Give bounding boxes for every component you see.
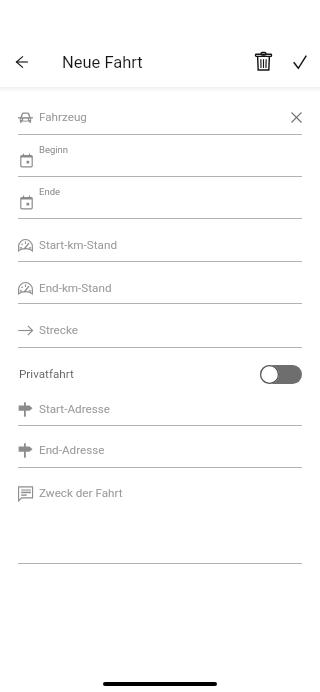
staticText: Zweck der Fahrt: [39, 486, 123, 500]
button[interactable]: Delete: [241, 39, 286, 84]
button[interactable]: Start-km-Stand: [0, 218, 320, 260]
staticText: Start-Adresse: [39, 402, 110, 416]
button[interactable]: End-Adresse: [0, 425, 320, 467]
button[interactable]: End-km-Stand: [0, 261, 320, 304]
staticText: Beginn: [39, 144, 69, 155]
staticText: Neue Fahrt: [62, 53, 143, 72]
button[interactable]: Start-Adresse: [0, 390, 320, 425]
button[interactable]: Fahrzeug: [0, 91, 320, 134]
button[interactable]: Strecke: [0, 303, 320, 347]
staticText: Ende: [39, 186, 61, 197]
button[interactable]: Privatfahrt: [0, 347, 320, 390]
button[interactable]: Beginn: [0, 134, 320, 176]
staticText: Start-km-Stand: [39, 238, 117, 252]
button[interactable]: Zweck der Fahrt: [0, 467, 320, 562]
button[interactable]: Save: [277, 39, 320, 84]
button[interactable]: Back: [0, 39, 44, 84]
button[interactable]: Ende: [0, 176, 320, 219]
staticText: Fahrzeug: [39, 110, 87, 124]
staticText: Strecke: [39, 323, 78, 337]
staticText: Privatfahrt: [19, 367, 74, 381]
staticText: End-Adresse: [39, 443, 105, 457]
staticText: End-km-Stand: [39, 281, 112, 295]
